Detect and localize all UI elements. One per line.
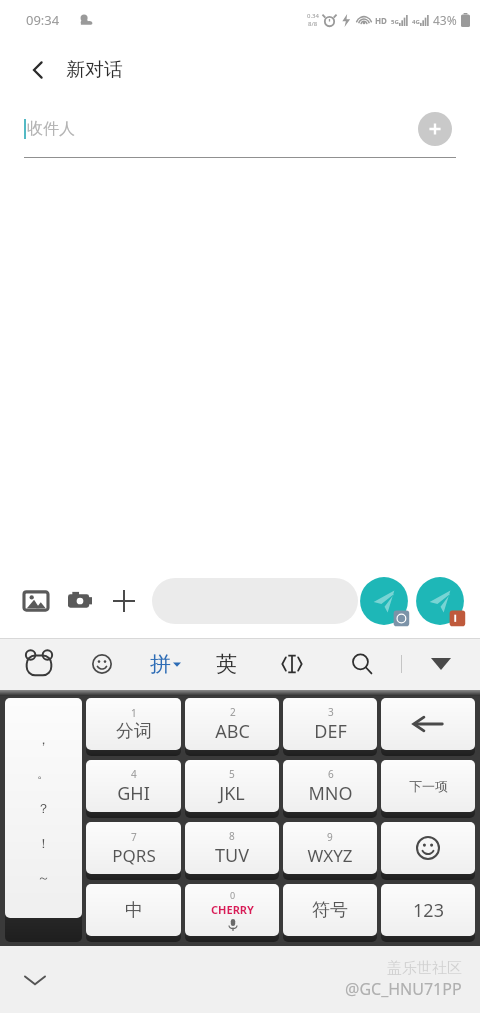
button[interactable]: 7	[86, 822, 181, 874]
staticText: 符号	[312, 899, 348, 922]
staticText: 9	[327, 830, 333, 844]
staticText: 中	[125, 899, 143, 922]
staticText: 4G	[412, 18, 420, 26]
button[interactable]: ，	[5, 698, 82, 918]
staticText: ～	[37, 869, 50, 885]
staticText: 8	[229, 829, 235, 843]
button[interactable]: Gallery	[14, 579, 58, 623]
button[interactable]: Hide keyboard	[420, 643, 462, 685]
other: Backspace	[411, 714, 445, 734]
button[interactable]: 0	[185, 884, 279, 936]
staticText: TUV	[215, 843, 249, 868]
staticText: 拼	[150, 651, 171, 677]
staticText: 收件人	[27, 119, 75, 139]
staticText: 2	[230, 705, 236, 719]
button[interactable]: Send	[358, 575, 410, 627]
staticText: ABC	[215, 719, 250, 744]
staticText: JKL	[219, 781, 245, 806]
staticText: 4	[131, 767, 137, 781]
button[interactable]: Back	[16, 48, 60, 92]
button[interactable]: 4	[86, 760, 181, 812]
button[interactable]: Baidu input settings	[18, 643, 60, 685]
button[interactable]: 6	[283, 760, 377, 812]
staticText: 8/8	[308, 20, 318, 28]
staticText: 123	[413, 898, 444, 923]
staticText: 6	[328, 767, 334, 781]
staticText: ！	[37, 835, 50, 851]
button[interactable]: Send	[414, 575, 466, 627]
button[interactable]: 符号	[283, 884, 377, 936]
staticText: 5	[229, 767, 235, 781]
staticText: 0.34	[307, 12, 319, 20]
staticText: 盖乐世社区	[387, 959, 462, 978]
staticText: GHI	[117, 781, 150, 806]
other: Voice input	[228, 919, 238, 931]
staticText: ，	[37, 731, 50, 747]
button[interactable]	[152, 578, 358, 624]
staticText: 分词	[116, 720, 152, 743]
staticText: 5G	[391, 18, 399, 26]
staticText: 0	[230, 889, 236, 901]
staticText: HD	[375, 15, 387, 26]
button[interactable]: 2	[185, 698, 279, 750]
staticText: 09:34	[26, 11, 60, 29]
staticText: 1	[131, 706, 137, 720]
button[interactable]: Emoji	[381, 822, 475, 874]
button[interactable]: 英	[209, 643, 243, 685]
staticText: 下一项	[409, 778, 448, 794]
button[interactable]: Cursor control	[271, 643, 313, 685]
button[interactable]: 1	[86, 698, 181, 750]
button[interactable]: 8	[185, 822, 279, 874]
staticText: 43%	[433, 12, 457, 28]
staticText: 3	[328, 705, 334, 719]
button[interactable]: Emoji	[81, 643, 123, 685]
button[interactable]: Add recipient	[418, 112, 452, 146]
button[interactable]: 123	[381, 884, 475, 936]
staticText: MNO	[308, 781, 353, 806]
staticText: @GC_HNU71PP	[345, 978, 462, 1000]
staticText: PQRS	[112, 844, 156, 867]
button[interactable]: Search	[341, 643, 383, 685]
staticText: DEF	[314, 719, 347, 744]
button[interactable]: Backspace	[381, 698, 475, 750]
staticText: 7	[131, 830, 137, 844]
other: Emoji	[416, 836, 440, 860]
button[interactable]: Collapse keyboard	[12, 957, 58, 1003]
button[interactable]: 中	[86, 884, 181, 936]
button[interactable]: 下一项	[381, 760, 475, 812]
button[interactable]: Camera	[58, 579, 102, 623]
button[interactable]: 5	[185, 760, 279, 812]
staticText: 。	[37, 765, 50, 781]
staticText: ？	[37, 800, 50, 816]
staticText: 英	[216, 651, 237, 677]
button[interactable]: 3	[283, 698, 377, 750]
staticText: WXYZ	[307, 844, 353, 867]
staticText: 新对话	[66, 58, 123, 82]
button[interactable]: 拼	[150, 643, 181, 685]
staticText: CHERRY	[211, 902, 254, 917]
button[interactable]: 9	[283, 822, 377, 874]
button[interactable]: More options	[102, 579, 146, 623]
